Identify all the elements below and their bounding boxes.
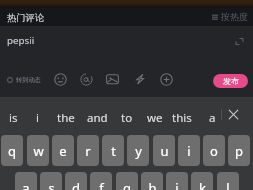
button[interactable]: a: [15, 172, 37, 190]
button[interactable]: Close: [227, 108, 240, 121]
staticText: 热门评论: [7, 12, 45, 24]
button[interactable]: l: [217, 172, 239, 190]
button[interactable]: this: [172, 110, 192, 126]
button[interactable]: y: [127, 135, 149, 166]
button[interactable]: r: [77, 135, 99, 166]
staticText: o: [210, 142, 218, 160]
staticText: r: [85, 142, 91, 160]
staticText: pepsii: [7, 34, 35, 47]
staticText: y: [135, 142, 142, 160]
button[interactable]: i: [178, 135, 200, 166]
button[interactable]: a: [209, 110, 216, 126]
staticText: 转到动态: [16, 76, 41, 84]
staticText: h: [148, 179, 157, 190]
staticText: p: [235, 142, 243, 160]
button[interactable]: Emoji: [54, 73, 67, 86]
button[interactable]: More: [160, 73, 173, 86]
button[interactable]: k: [191, 172, 213, 190]
staticText: d: [72, 179, 80, 190]
staticText: u: [160, 142, 169, 160]
button[interactable]: o: [203, 135, 225, 166]
staticText: 按热度: [221, 11, 248, 22]
staticText: j: [175, 179, 179, 190]
staticText: a: [22, 179, 30, 190]
button[interactable]: and: [87, 110, 108, 126]
staticText: f: [99, 179, 104, 190]
button[interactable]: q: [1, 135, 23, 166]
button[interactable]: 按热度: [212, 11, 248, 22]
button[interactable]: d: [65, 172, 87, 190]
staticText: t: [111, 142, 116, 160]
button[interactable]: e: [52, 135, 74, 166]
button[interactable]: u: [153, 135, 175, 166]
button[interactable]: f: [90, 172, 112, 190]
staticText: i: [187, 142, 191, 160]
staticText: w: [33, 142, 44, 160]
button[interactable]: Mention: [80, 73, 93, 86]
button[interactable]: i: [36, 110, 39, 126]
staticText: q: [8, 142, 16, 160]
staticText: g: [123, 179, 131, 190]
button[interactable]: 转到动态: [7, 76, 41, 84]
button[interactable]: Expand: [235, 37, 244, 46]
button[interactable]: 发布: [213, 74, 248, 88]
button[interactable]: Lightning: [134, 73, 146, 85]
staticText: s: [48, 179, 55, 190]
button[interactable]: we: [147, 110, 163, 126]
button[interactable]: is: [9, 110, 18, 126]
button[interactable]: p: [228, 135, 250, 166]
button[interactable]: the: [57, 110, 75, 126]
button[interactable]: g: [116, 172, 138, 190]
button[interactable]: t: [102, 135, 124, 166]
staticText: l: [226, 179, 230, 190]
button[interactable]: to: [121, 110, 133, 126]
button[interactable]: s: [40, 172, 62, 190]
staticText: 发布: [223, 76, 239, 86]
button[interactable]: h: [141, 172, 163, 190]
staticText: k: [199, 179, 206, 190]
button[interactable]: Picture: [106, 73, 119, 86]
button[interactable]: w: [27, 135, 49, 166]
button[interactable]: j: [166, 172, 188, 190]
staticText: e: [59, 142, 67, 160]
